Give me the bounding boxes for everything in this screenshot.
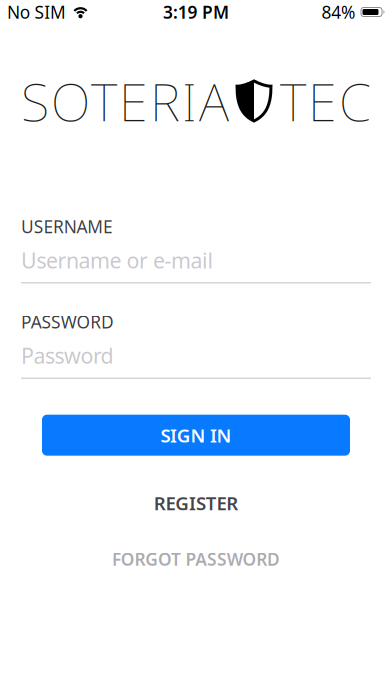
button[interactable]: PASSWORD [21,341,371,379]
staticText: USERNAME [21,215,113,238]
staticText: REGISTER [154,491,238,515]
staticText: No SIM [7,0,66,23]
staticText: Username or e-mail [21,246,213,274]
staticText: SIGN IN [160,423,232,448]
button[interactable]: REGISTER [154,491,238,515]
button[interactable]: FORGOT PASSWORD [112,547,280,570]
button[interactable]: SIGN IN [42,415,350,456]
staticText: Password [21,341,113,370]
staticText: PASSWORD [21,310,114,333]
staticText: 3:19 PM [163,0,229,23]
staticText: SOTERIA [21,66,229,136]
staticText: 84% [321,0,355,23]
staticText: TEC [280,66,371,136]
button[interactable]: USERNAME [21,246,371,283]
staticText: FORGOT PASSWORD [112,547,280,570]
